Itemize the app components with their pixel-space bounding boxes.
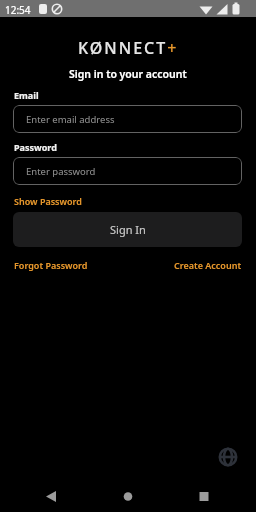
button[interactable] — [0, 484, 256, 512]
staticText: Enter password — [26, 165, 96, 178]
staticText: Enter email address — [26, 113, 115, 126]
staticText: Password — [14, 141, 57, 153]
staticText: Email — [14, 89, 39, 101]
staticText: Sign in to your account — [69, 67, 187, 81]
staticText: Sign In — [110, 222, 146, 237]
button[interactable]: Create Account — [174, 259, 242, 271]
button[interactable]: Enter email address — [13, 105, 242, 133]
button[interactable]: Forgot Password — [14, 259, 88, 271]
staticText: KØNNECT+ — [78, 37, 179, 59]
staticText: 12:54 — [5, 3, 31, 17]
button[interactable]: Show Password — [14, 195, 82, 207]
button[interactable]: Sign In — [13, 212, 242, 247]
button[interactable]: Enter password — [13, 157, 242, 185]
